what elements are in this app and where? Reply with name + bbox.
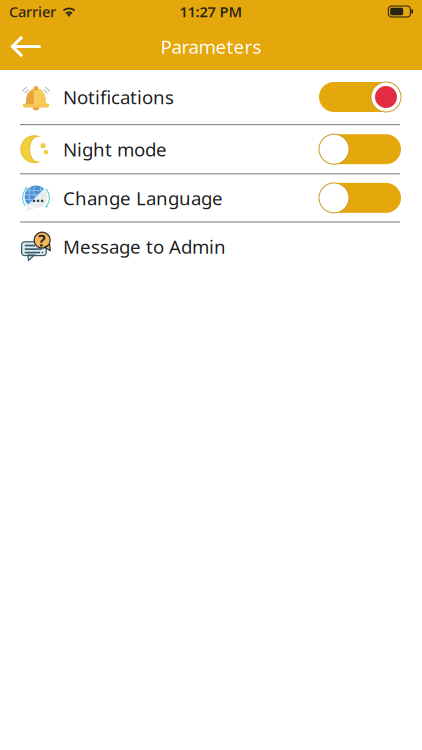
button[interactable]: Back [0,23,53,70]
button[interactable]: Change Language [0,174,422,221]
button[interactable]: ? [0,223,422,271]
button[interactable]: Toggle off [319,134,401,164]
button[interactable]: Night mode [0,125,422,173]
staticText: Parameters [160,34,261,59]
staticText: Night mode [63,137,167,162]
staticText: Carrier [9,2,56,21]
button[interactable]: Notifications [0,70,422,124]
button[interactable]: Toggle on [319,82,401,112]
staticText: ? [38,230,46,251]
staticText: Change Language [63,185,223,210]
staticText: 11:27 PM [179,2,242,21]
button[interactable]: Toggle off [319,183,401,213]
staticText: Message to Admin [63,234,226,259]
staticText: Notifications [63,85,174,109]
